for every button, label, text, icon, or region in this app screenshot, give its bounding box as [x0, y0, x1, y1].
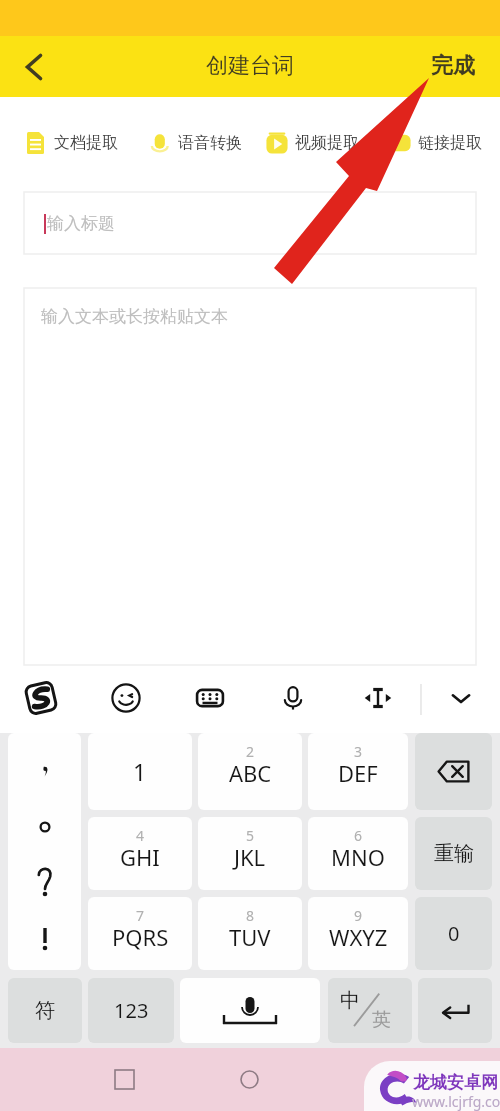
staticText: 链接提取: [418, 133, 482, 153]
staticText: 123: [114, 997, 149, 1024]
button[interactable]: Move cursor: [361, 681, 395, 715]
staticText: 2: [246, 742, 255, 761]
staticText: 输入标题: [47, 213, 115, 234]
staticText: 5: [246, 826, 255, 845]
button[interactable]: 1: [88, 733, 192, 810]
button[interactable]: Voice input: [276, 681, 310, 715]
staticText: 3: [354, 742, 363, 761]
button[interactable]: 文档提取: [25, 125, 118, 161]
staticText: TUV: [229, 922, 271, 952]
staticText: 龙城安卓网: [413, 1072, 498, 1093]
button[interactable]: Punctuation: [8, 733, 81, 970]
staticText: 文档提取: [54, 133, 118, 153]
button[interactable]: 符: [8, 978, 82, 1043]
button[interactable]: 6: [308, 817, 408, 890]
button[interactable]: 输入文本或长按粘贴文本: [24, 288, 476, 665]
button[interactable]: 重输: [415, 817, 492, 890]
staticText: 符: [35, 998, 55, 1023]
button[interactable]: 7: [88, 897, 192, 970]
staticText: GHI: [120, 842, 160, 872]
button[interactable]: 链接提取: [389, 125, 482, 161]
button[interactable]: 9: [308, 897, 408, 970]
button[interactable]: 输入标题: [24, 192, 476, 254]
button[interactable]: Emoji: [109, 681, 143, 715]
staticText: WXYZ: [329, 922, 388, 952]
staticText: www.lcjrfg.com: [412, 1092, 500, 1111]
button[interactable]: Back: [12, 44, 58, 90]
staticText: 1: [133, 756, 147, 787]
button[interactable]: 123: [88, 978, 174, 1043]
staticText: 0: [448, 920, 460, 947]
staticText: 视频提取: [295, 133, 359, 153]
button[interactable]: 3: [308, 733, 408, 810]
staticText: ABC: [229, 758, 272, 788]
staticText: 创建台词: [206, 52, 294, 80]
staticText: 9: [354, 906, 363, 925]
staticText: PQRS: [112, 922, 169, 952]
button[interactable]: Delete: [415, 733, 492, 810]
staticText: 6: [354, 826, 363, 845]
staticText: 7: [136, 906, 145, 925]
staticText: 中: [340, 988, 360, 1013]
button[interactable]: 视频提取: [266, 125, 359, 161]
staticText: MNO: [331, 842, 385, 872]
button[interactable]: 0: [415, 897, 492, 970]
button[interactable]: 8: [198, 897, 302, 970]
button[interactable]: Keyboard layout: [193, 681, 227, 715]
staticText: 完成: [431, 52, 475, 80]
button[interactable]: 中英: [328, 978, 412, 1043]
staticText: JKL: [234, 842, 266, 872]
button[interactable]: Input method: [24, 681, 58, 715]
staticText: DEF: [338, 758, 378, 788]
staticText: 英: [372, 1008, 391, 1032]
staticText: 输入文本或长按粘贴文本: [41, 306, 228, 327]
button[interactable]: Recents: [102, 1048, 146, 1111]
button[interactable]: 5: [198, 817, 302, 890]
button[interactable]: Home: [227, 1048, 271, 1111]
button[interactable]: 4: [88, 817, 192, 890]
staticText: 4: [136, 826, 145, 845]
button[interactable]: Space / voice: [180, 978, 320, 1043]
button[interactable]: 语音转换: [149, 125, 242, 161]
staticText: 重输: [434, 841, 474, 866]
button[interactable]: Enter: [418, 978, 492, 1043]
staticText: 语音转换: [178, 133, 242, 153]
button[interactable]: Hide keyboard: [444, 681, 478, 715]
button[interactable]: 2: [198, 733, 302, 810]
staticText: 8: [246, 906, 255, 925]
button[interactable]: 完成: [417, 43, 500, 91]
